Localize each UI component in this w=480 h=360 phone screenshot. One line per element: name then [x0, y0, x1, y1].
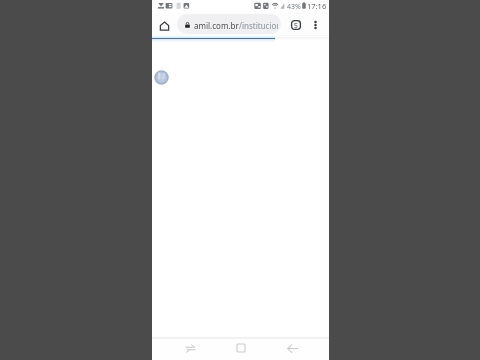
button[interactable]: Home	[156, 17, 173, 34]
button[interactable]: More options	[308, 18, 322, 32]
staticText: 17:16	[307, 1, 327, 11]
staticText: 43%	[287, 2, 301, 12]
staticText: 5	[294, 21, 298, 30]
button[interactable]: Home	[232, 339, 250, 357]
button[interactable]: amil.com.br	[177, 14, 281, 34]
staticText: /institucion	[239, 20, 278, 31]
staticText: amil.com.br	[194, 20, 239, 31]
button[interactable]: Tabs	[288, 17, 304, 33]
button[interactable]: Recent apps	[180, 339, 200, 357]
button[interactable]: Back	[282, 339, 302, 357]
